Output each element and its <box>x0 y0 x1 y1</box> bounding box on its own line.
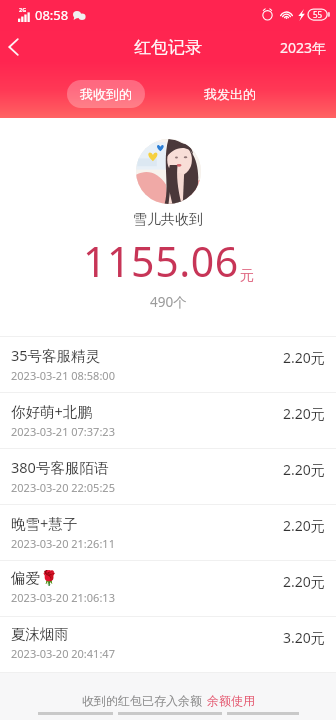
staticText: 55 <box>313 9 323 20</box>
staticText: 2023-03-20 21:26:11 <box>11 536 115 551</box>
button[interactable]: 2023年 <box>269 32 336 63</box>
staticText: 2.20元 <box>283 516 325 535</box>
staticText: 雪儿共收到 <box>133 211 203 229</box>
staticText: 我收到的 <box>80 86 132 102</box>
button[interactable]: 偏爱🌹 <box>0 561 336 616</box>
staticText: 收到的红包已存入余额 <box>82 693 202 708</box>
button[interactable]: 我发出的 <box>191 80 269 108</box>
staticText: 2023-03-21 07:37:23 <box>11 424 115 439</box>
button[interactable]: 你好萌+北鹏 <box>0 393 336 448</box>
staticText: 我发出的 <box>204 86 256 102</box>
button[interactable]: Back <box>0 31 32 63</box>
staticText: 380号客服陌语 <box>11 457 109 477</box>
staticText: 2023-03-20 21:06:13 <box>11 590 115 605</box>
staticText: 2023-03-20 22:05:25 <box>11 480 115 495</box>
button[interactable]: 380号客服陌语 <box>0 449 336 504</box>
staticText: 偏爱🌹 <box>11 569 59 587</box>
staticText: 2.20元 <box>283 404 325 423</box>
button[interactable]: 晚雪+慧子 <box>0 505 336 560</box>
staticText: 2023-03-21 08:58:00 <box>11 368 115 383</box>
button[interactable]: 35号客服精灵 <box>0 337 336 392</box>
staticText: 晚雪+慧子 <box>11 513 78 533</box>
staticText: 1155.06 <box>83 233 239 289</box>
staticText: 2023-03-20 20:41:47 <box>11 646 115 661</box>
staticText: 元 <box>240 267 254 285</box>
button[interactable]: 夏沫烟雨 <box>0 617 336 672</box>
staticText: 2.20元 <box>283 348 325 367</box>
staticText: 红包记录 <box>134 37 202 58</box>
button[interactable]: 我收到的 <box>67 80 145 108</box>
staticText: 3.20元 <box>283 628 325 647</box>
staticText: 夏沫烟雨 <box>11 625 69 643</box>
staticText: 2.20元 <box>283 572 325 591</box>
staticText: 08:58 <box>35 6 69 24</box>
staticText: 2G <box>19 6 27 13</box>
staticText: 490个 <box>150 293 187 311</box>
staticText: 余额使用 <box>207 693 255 708</box>
staticText: 2023年 <box>280 38 327 57</box>
staticText: 2.20元 <box>283 460 325 479</box>
button[interactable]: Profile photo <box>136 139 201 204</box>
staticText: 你好萌+北鹏 <box>11 401 92 421</box>
button[interactable]: 余额使用 <box>207 693 255 708</box>
staticText: 35号客服精灵 <box>11 345 101 365</box>
